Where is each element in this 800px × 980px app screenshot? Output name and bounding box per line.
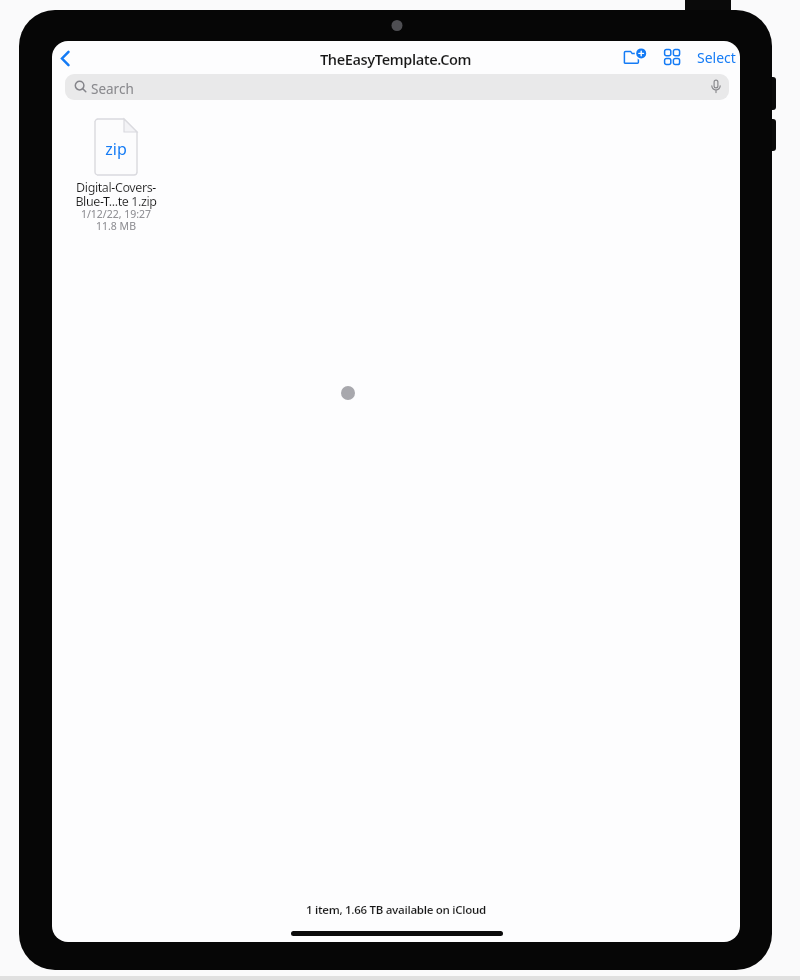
staticText: Select [697, 48, 736, 67]
staticText: 1/12/22, 19:27 11.8 MB [66, 207, 166, 233]
button[interactable] [661, 46, 683, 68]
button[interactable] [621, 45, 647, 69]
staticText: TheEasyTemplate.Com [320, 49, 472, 69]
button[interactable]: Select [697, 48, 736, 67]
staticText: Search [91, 80, 134, 98]
staticText: Digital-Covers- Blue-T...te 1.zip [66, 179, 166, 209]
button[interactable]: Search [65, 74, 729, 100]
button[interactable] [54, 47, 76, 69]
staticText: zip [94, 138, 138, 160]
staticText: 1 item, 1.66 TB available on iCloud [306, 902, 487, 918]
button[interactable] [72, 118, 160, 230]
